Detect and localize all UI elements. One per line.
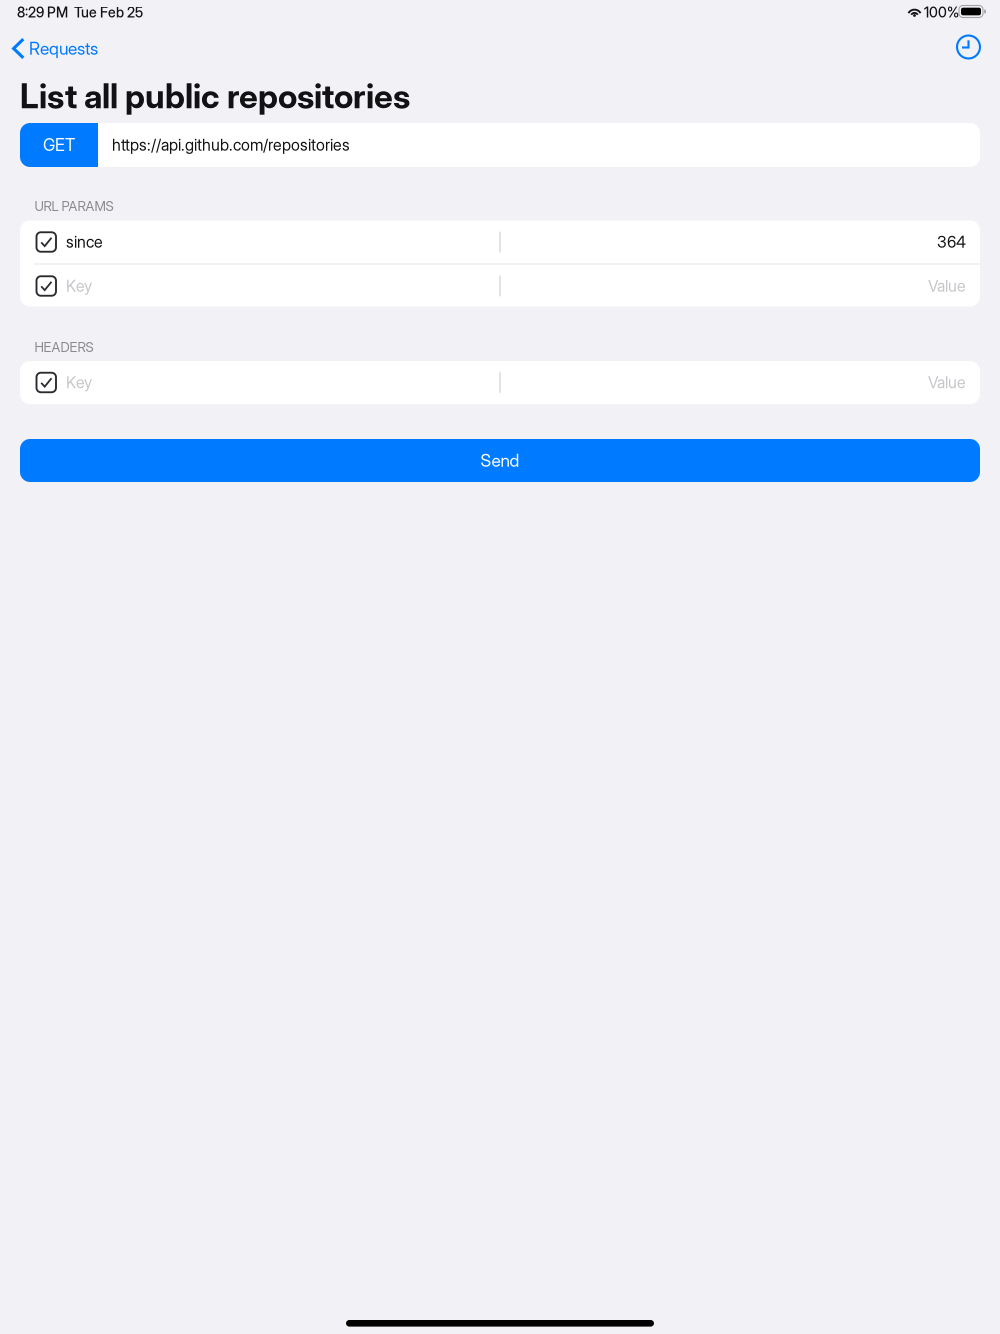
button[interactable]: since [20, 220, 980, 263]
staticText: Value [928, 276, 966, 296]
button[interactable]: Key [20, 264, 980, 307]
staticText: URL PARAMS [34, 198, 113, 214]
button[interactable]: Key [20, 361, 980, 404]
staticText: HEADERS [34, 339, 93, 355]
staticText: 364 [937, 232, 966, 252]
button[interactable]: Requests [0, 26, 108, 70]
staticText: Key [66, 373, 92, 392]
staticText: List all public repositories [20, 76, 410, 116]
staticText: since [66, 232, 103, 252]
staticText: Send [480, 450, 519, 471]
button[interactable]: History [939, 25, 1000, 69]
button[interactable]: GET [20, 123, 98, 167]
staticText: 100% [924, 4, 959, 21]
staticText: Requests [29, 38, 98, 59]
staticText: Key [66, 276, 92, 296]
staticText: Value [928, 373, 966, 392]
staticText: https://api.github.com/repositories [112, 135, 350, 155]
button[interactable]: Send [20, 439, 980, 482]
staticText: GET [43, 135, 75, 155]
staticText: Tue Feb 25 [74, 4, 143, 21]
staticText: 8:29 PM [17, 4, 68, 21]
